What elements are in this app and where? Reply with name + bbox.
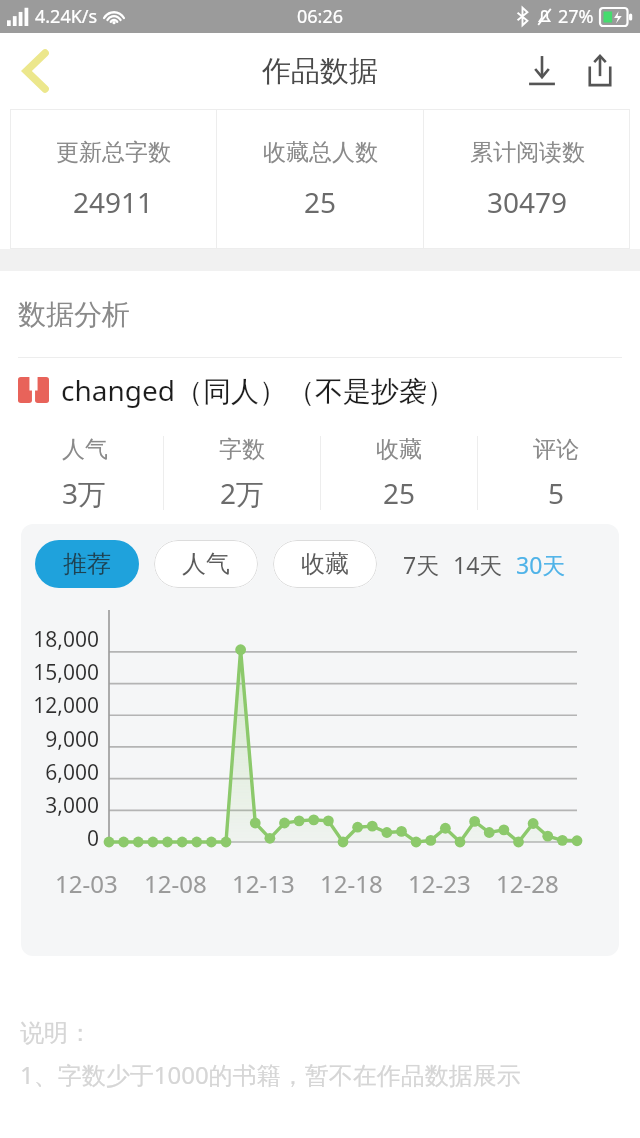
staticText: 12-18 — [320, 867, 383, 900]
staticText: 3,000 — [45, 791, 99, 820]
staticText: 12-03 — [55, 867, 118, 900]
staticText: 06:26 — [297, 4, 344, 29]
staticText: 说明： — [20, 1018, 92, 1048]
button[interactable]: Back — [8, 43, 64, 99]
staticText: 评论 — [533, 435, 579, 464]
staticText: 人气 — [62, 435, 108, 464]
staticText: 3万 — [62, 474, 107, 512]
button[interactable]: 累计阅读数 — [424, 109, 630, 249]
staticText: 12,000 — [33, 691, 99, 720]
staticText: changed（同人）（不是抄袭） — [61, 371, 455, 409]
staticText: 12-23 — [408, 867, 471, 900]
staticText: 27% — [558, 4, 594, 29]
staticText: 25 — [383, 474, 416, 512]
staticText: 2万 — [220, 474, 265, 512]
staticText: 1、字数少于1000的书籍，暂不在作品数据展示 — [20, 1058, 521, 1091]
button[interactable]: 收藏 — [321, 422, 477, 524]
staticText: 12-13 — [232, 867, 295, 900]
staticText: 字数 — [219, 435, 265, 464]
staticText: 收藏总人数 — [263, 138, 378, 167]
button[interactable]: changed（同人）（不是抄袭） — [18, 358, 640, 422]
staticText: 12-08 — [144, 867, 207, 900]
staticText: 作品数据 — [262, 53, 378, 90]
staticText: 15,000 — [33, 658, 99, 687]
staticText: 6,000 — [45, 758, 99, 787]
button[interactable]: 人气 — [6, 422, 163, 524]
staticText: 5 — [548, 474, 565, 512]
staticText: 数据分析 — [18, 297, 130, 332]
staticText: 4.24K/s — [35, 4, 98, 29]
staticText: 25 — [304, 183, 337, 221]
staticText: 9,000 — [45, 725, 99, 754]
staticText: 24911 — [73, 183, 154, 221]
button[interactable]: Share — [572, 43, 628, 99]
staticText: 30479 — [487, 183, 568, 221]
staticText: 更新总字数 — [56, 138, 171, 167]
staticText: 人气 — [182, 549, 230, 579]
staticText: 0 — [86, 824, 99, 853]
staticText: 推荐 — [63, 549, 111, 579]
button[interactable]: 评论 — [478, 422, 634, 524]
button[interactable]: 字数 — [164, 422, 320, 524]
staticText: 累计阅读数 — [470, 138, 585, 167]
button[interactable]: 30天 — [516, 549, 566, 580]
button[interactable]: Download — [514, 43, 570, 99]
staticText: 12-28 — [496, 867, 559, 900]
button[interactable]: 人气 — [154, 540, 258, 588]
button[interactable]: 推荐 — [35, 540, 139, 588]
button[interactable]: 收藏 — [273, 540, 377, 588]
staticText: 收藏 — [376, 435, 422, 464]
button[interactable]: 7天 — [403, 549, 440, 580]
staticText: 收藏 — [301, 549, 349, 579]
staticText: 18,000 — [33, 625, 99, 654]
button[interactable]: 14天 — [453, 549, 503, 580]
button[interactable]: 更新总字数 — [10, 109, 216, 249]
button[interactable]: 收藏总人数 — [217, 109, 423, 249]
